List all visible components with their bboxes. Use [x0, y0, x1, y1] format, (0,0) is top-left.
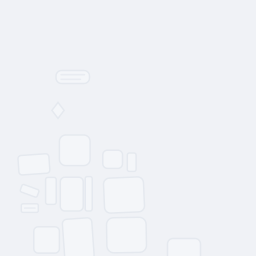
button[interactable]: Photo [59, 135, 90, 166]
button[interactable]: Label [21, 204, 38, 212]
button[interactable]: Story [63, 218, 93, 256]
button[interactable]: Title [56, 70, 89, 83]
button[interactable]: Bar [85, 177, 92, 211]
button[interactable]: Tag [21, 187, 39, 195]
button[interactable]: Column [46, 177, 56, 204]
button[interactable]: More [167, 238, 200, 256]
button[interactable]: Item [34, 227, 59, 253]
button[interactable]: Tile [103, 150, 122, 168]
button[interactable]: Strip [127, 153, 136, 171]
button[interactable]: Gallery [104, 177, 144, 212]
button[interactable]: Panel [60, 177, 83, 211]
button[interactable]: Marker [52, 102, 64, 118]
button[interactable]: Note [18, 155, 49, 174]
button[interactable]: Album [107, 217, 146, 253]
